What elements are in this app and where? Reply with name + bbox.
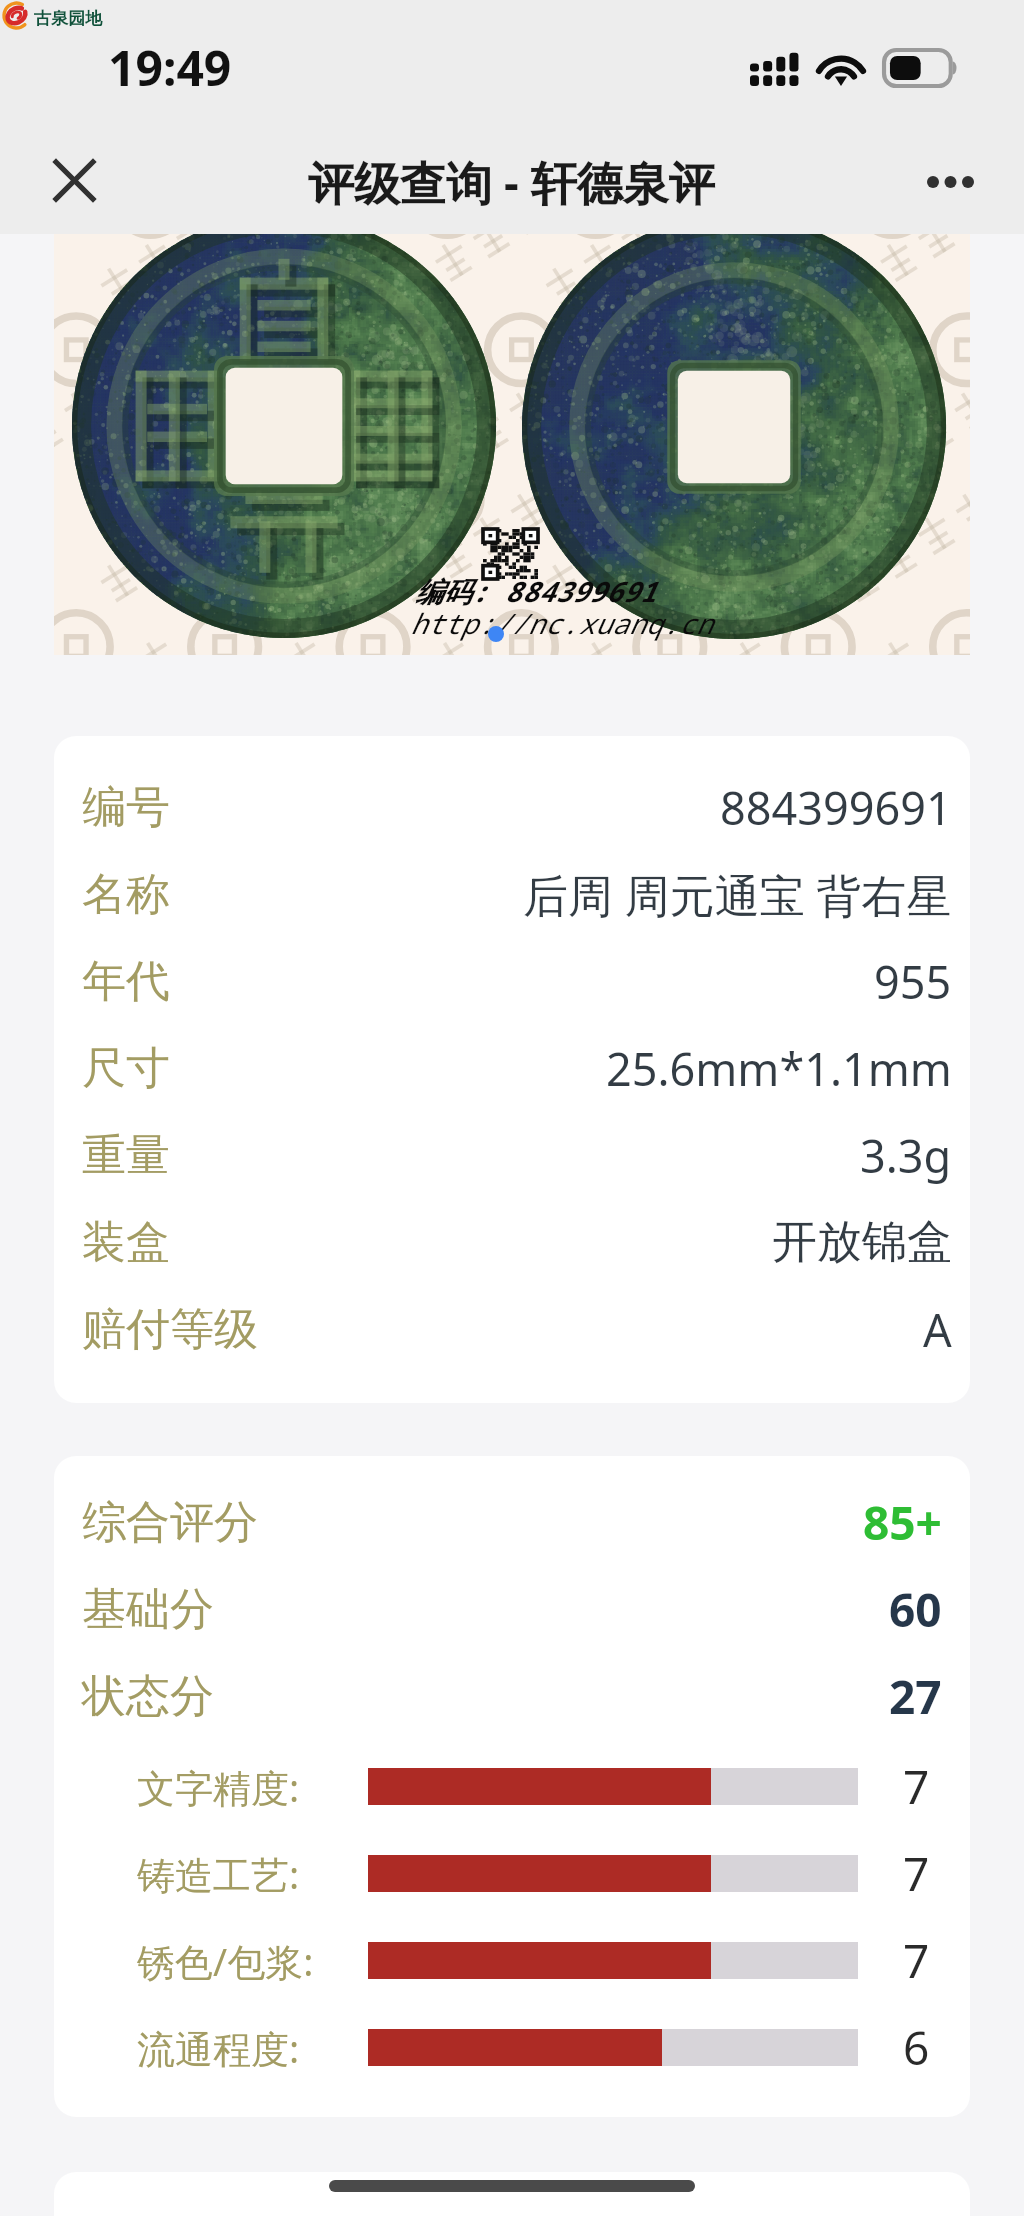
staticText: 后周 周元通宝 背右星: [523, 864, 952, 925]
button[interactable]: More options: [896, 136, 1004, 228]
staticText: 7: [903, 1755, 930, 1818]
staticText: 27: [889, 1665, 942, 1728]
staticText: 锈色/包浆:: [137, 1935, 314, 1987]
button[interactable]: 铸造工艺:: [82, 1830, 942, 1917]
staticText: 60: [889, 1578, 942, 1641]
staticText: 3.3g: [860, 1125, 952, 1186]
staticText: 7: [903, 1929, 930, 1992]
staticText: 铸造工艺:: [137, 1848, 300, 1900]
button[interactable]: Coin photo: [54, 234, 970, 655]
button[interactable]: 装盒: [82, 1199, 952, 1286]
button[interactable]: 锈色/包浆:: [82, 1917, 942, 2004]
staticText: 尺寸: [82, 1041, 170, 1096]
staticText: 重量: [82, 1128, 170, 1183]
staticText: 85+: [863, 1491, 942, 1554]
staticText: A: [923, 1299, 952, 1360]
button[interactable]: 赔付等级: [82, 1286, 952, 1373]
button[interactable]: 年代: [82, 938, 952, 1025]
button[interactable]: 编号: [82, 764, 952, 851]
staticText: 7: [903, 1842, 930, 1905]
button[interactable]: 综合评分: [82, 1479, 942, 1566]
staticText: 综合评分: [82, 1495, 258, 1550]
button[interactable]: 流通程度:: [82, 2004, 942, 2091]
staticText: 编号: [82, 780, 170, 835]
staticText: 955: [874, 951, 952, 1012]
staticText: 赔付等级: [82, 1302, 258, 1357]
button[interactable]: 重量: [82, 1112, 952, 1199]
staticText: 19:49: [108, 35, 232, 100]
button[interactable]: 状态分: [82, 1653, 942, 1740]
staticText: 装盒: [82, 1215, 170, 1270]
button[interactable]: 基础分: [82, 1566, 942, 1653]
staticText: 古泉园地: [34, 8, 102, 29]
staticText: 流通程度:: [137, 2022, 300, 2074]
staticText: 年代: [82, 954, 170, 1009]
staticText: 评级查询 - 轩德泉评: [308, 151, 715, 214]
staticText: 文字精度:: [137, 1761, 300, 1813]
staticText: 名称: [82, 867, 170, 922]
staticText: 6: [903, 2016, 930, 2079]
staticText: 基础分: [82, 1582, 214, 1637]
button[interactable]: 文字精度:: [82, 1743, 942, 1830]
staticText: 884399691: [720, 777, 952, 838]
staticText: 25.6mm*1.1mm: [606, 1038, 952, 1099]
button[interactable]: 名称: [82, 851, 952, 938]
button[interactable]: Close: [18, 127, 130, 233]
staticText: http://nc.xuanq.cn: [410, 604, 713, 642]
button[interactable]: 尺寸: [82, 1025, 952, 1112]
staticText: 开放锦盒: [772, 1214, 952, 1271]
staticText: 状态分: [82, 1669, 214, 1724]
staticText: 编码: 884399691: [415, 572, 656, 610]
